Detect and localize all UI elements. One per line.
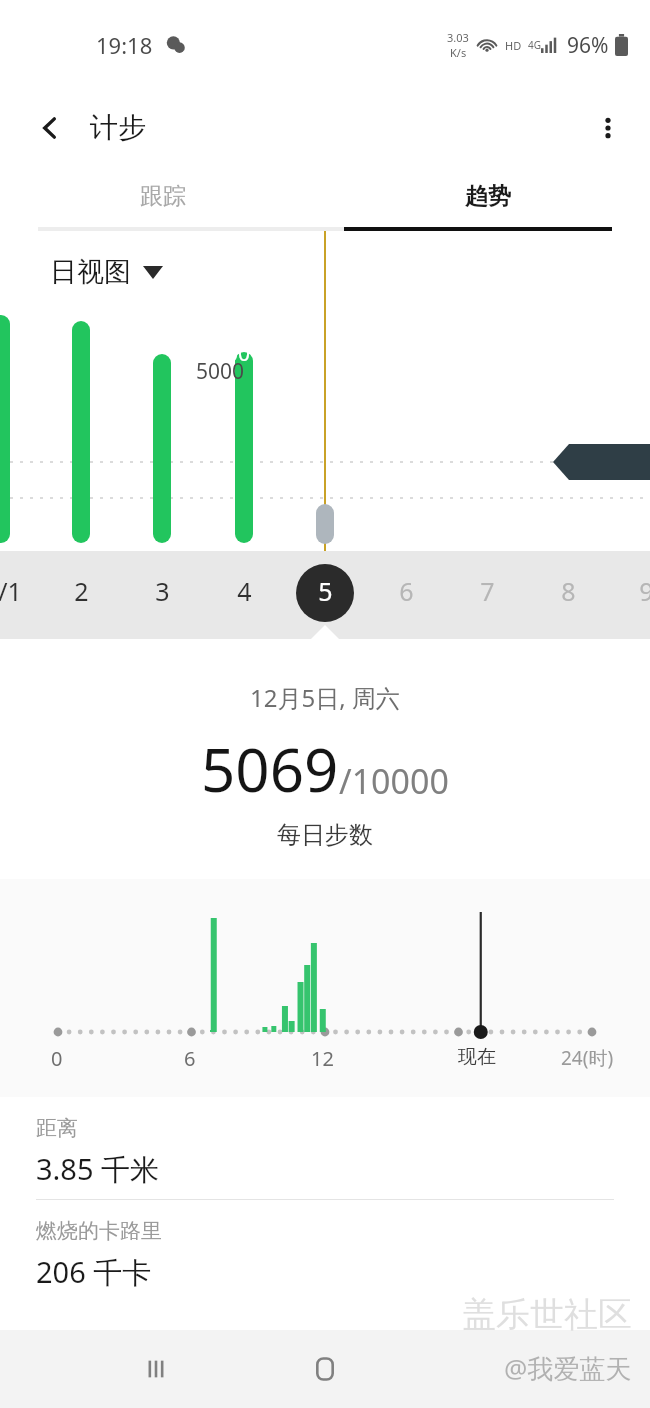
- button[interactable]: 距离: [0, 1097, 650, 1199]
- staticText: 6: [399, 574, 414, 608]
- staticText: 96%: [567, 31, 609, 60]
- staticText: 9: [639, 574, 650, 608]
- staticText: HD: [505, 38, 522, 53]
- staticText: 5: [318, 574, 333, 608]
- button[interactable]: 9: [616, 561, 650, 621]
- staticText: 2: [74, 574, 89, 608]
- staticText: 12月5日, 周六: [250, 681, 400, 714]
- button[interactable]: 2: [51, 561, 111, 621]
- staticText: 3: [155, 574, 170, 608]
- staticText: K/s: [450, 45, 467, 60]
- button[interactable]: 8: [538, 561, 598, 621]
- staticText: 8: [561, 574, 576, 608]
- staticText: 6: [184, 1045, 196, 1072]
- button[interactable]: 日视图: [50, 255, 163, 289]
- staticText: 4: [237, 574, 252, 608]
- staticText: 跟踪: [140, 182, 186, 211]
- staticText: 5000: [196, 357, 245, 386]
- staticText: /10000: [339, 758, 449, 804]
- staticText: 10000: [190, 339, 251, 368]
- button[interactable]: /1: [0, 561, 40, 621]
- button[interactable]: 燃烧的卡路里: [0, 1200, 650, 1302]
- button[interactable]: 跟踪: [0, 165, 325, 227]
- button[interactable]: Recents: [128, 1341, 184, 1397]
- staticText: 19:18: [96, 30, 153, 60]
- button[interactable]: 4: [214, 561, 274, 621]
- staticText: 5069: [201, 728, 339, 810]
- button[interactable]: 5: [295, 561, 355, 621]
- button[interactable]: 3: [132, 561, 192, 621]
- button[interactable]: More options: [582, 102, 634, 154]
- staticText: 盖乐世社区: [462, 1293, 632, 1336]
- staticText: 距离: [36, 1115, 78, 1141]
- button[interactable]: 7: [457, 561, 517, 621]
- staticText: 4G: [528, 38, 541, 52]
- staticText: @我爱蓝天: [504, 1350, 632, 1386]
- staticText: 3.03: [447, 30, 469, 45]
- button[interactable]: 趋势: [325, 165, 650, 227]
- staticText: 24(时): [561, 1045, 614, 1071]
- staticText: 计步: [90, 110, 146, 145]
- staticText: 206 千卡: [36, 1252, 152, 1292]
- staticText: 燃烧的卡路里: [36, 1218, 162, 1244]
- staticText: 趋势: [465, 182, 511, 211]
- button[interactable]: 6: [376, 561, 436, 621]
- button[interactable]: Home: [297, 1341, 353, 1397]
- staticText: /1: [0, 574, 22, 608]
- staticText: 3.85 千米: [36, 1149, 160, 1189]
- staticText: 12: [311, 1045, 334, 1072]
- staticText: 7: [480, 574, 495, 608]
- staticText: 现在: [458, 1045, 496, 1069]
- staticText: 0: [51, 1045, 63, 1072]
- staticText: 日视图: [50, 255, 131, 289]
- staticText: 每日步数: [277, 820, 373, 850]
- button[interactable]: Back: [26, 104, 74, 152]
